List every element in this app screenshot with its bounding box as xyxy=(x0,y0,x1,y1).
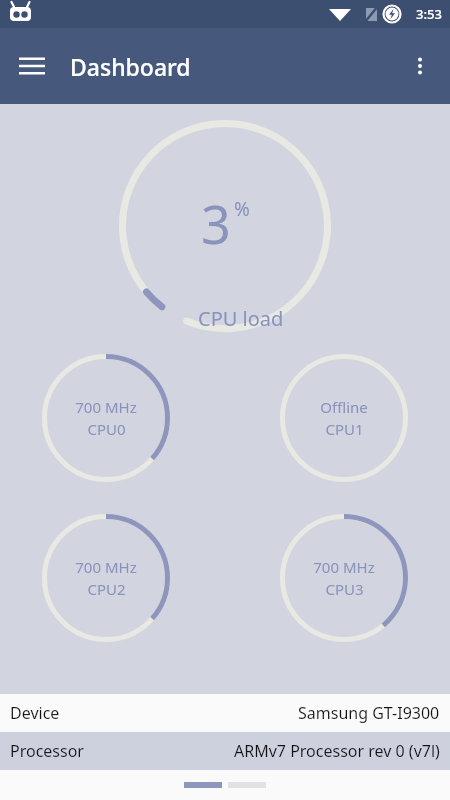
button[interactable]: Open navigation drawer xyxy=(8,42,56,90)
staticText: 700 MHz xyxy=(75,557,137,577)
staticText: Processor xyxy=(10,740,84,762)
button[interactable]: 700 MHz xyxy=(42,354,170,482)
button[interactable]: Device xyxy=(0,694,450,732)
staticText: CPU3 xyxy=(325,579,364,599)
staticText: % xyxy=(234,196,250,222)
staticText: 3 xyxy=(201,188,231,259)
staticText: 700 MHz xyxy=(313,557,375,577)
button[interactable]: Processor xyxy=(0,732,450,770)
staticText: Dashboard xyxy=(70,51,191,82)
button[interactable]: More options xyxy=(396,42,444,90)
staticText: CPU0 xyxy=(87,419,126,439)
staticText: CPU load xyxy=(198,305,284,332)
staticText: 3:53 xyxy=(416,5,442,23)
staticText: ARMv7 Processor rev 0 (v7l) xyxy=(234,740,440,762)
button[interactable]: 700 MHz xyxy=(280,514,408,642)
staticText: 700 MHz xyxy=(75,397,137,417)
button[interactable]: Offline xyxy=(280,354,408,482)
staticText: Offline xyxy=(320,397,368,417)
staticText: Device xyxy=(10,702,60,724)
staticText: CPU1 xyxy=(325,419,364,439)
staticText: CPU2 xyxy=(87,579,126,599)
button[interactable]: 700 MHz xyxy=(42,514,170,642)
staticText: Samsung GT-I9300 xyxy=(298,702,440,724)
